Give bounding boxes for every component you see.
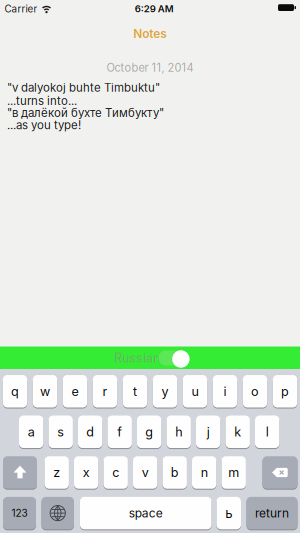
staticText: ...as you type! bbox=[7, 118, 81, 132]
staticText: ь bbox=[225, 505, 232, 521]
staticText: u bbox=[191, 384, 198, 399]
button[interactable]: ь bbox=[216, 497, 241, 529]
staticText: z bbox=[53, 465, 60, 480]
button[interactable]: d bbox=[78, 416, 102, 448]
button[interactable]: v bbox=[133, 456, 157, 489]
staticText: b bbox=[171, 465, 179, 480]
staticText: n bbox=[201, 465, 208, 480]
staticText: "в далёкой бухте Тимбукту" bbox=[7, 106, 164, 120]
staticText: c bbox=[112, 465, 119, 480]
button[interactable]: space bbox=[80, 497, 211, 529]
staticText: t bbox=[133, 384, 137, 399]
staticText: s bbox=[57, 424, 64, 439]
staticText: Carrier bbox=[4, 3, 37, 15]
button[interactable]: z bbox=[44, 456, 69, 489]
staticText: p bbox=[281, 384, 289, 399]
staticText: ...turns into... bbox=[7, 94, 77, 108]
staticText: a bbox=[28, 424, 35, 439]
staticText: w bbox=[40, 384, 50, 399]
button[interactable]: x bbox=[74, 456, 98, 489]
button[interactable]: j bbox=[196, 416, 220, 448]
staticText: j bbox=[207, 424, 210, 439]
staticText: m bbox=[228, 465, 239, 480]
staticText: i bbox=[223, 384, 226, 399]
button[interactable]: h bbox=[166, 416, 191, 448]
button[interactable]: e bbox=[63, 375, 87, 408]
staticText: o bbox=[251, 384, 259, 399]
staticText: x bbox=[83, 465, 90, 480]
button[interactable]: b bbox=[162, 456, 187, 489]
button[interactable]: r bbox=[93, 375, 117, 408]
staticText: v bbox=[142, 465, 149, 480]
staticText: "v dalyokoj buhte Timbuktu" bbox=[7, 81, 160, 94]
button[interactable]: w bbox=[33, 375, 57, 408]
button[interactable]: y bbox=[153, 375, 177, 408]
staticText: r bbox=[102, 384, 107, 399]
staticText: 123 bbox=[11, 507, 27, 519]
button[interactable]: p bbox=[273, 375, 297, 408]
button[interactable]: t bbox=[123, 375, 147, 408]
staticText: 6:29 AM bbox=[135, 3, 174, 15]
staticText: Notes bbox=[133, 27, 167, 41]
button[interactable]: Delete bbox=[262, 456, 297, 489]
button[interactable]: m bbox=[221, 456, 246, 489]
button[interactable]: a bbox=[19, 416, 43, 448]
staticText: y bbox=[161, 384, 168, 399]
staticText: e bbox=[71, 384, 78, 399]
staticText: October 11, 2014 bbox=[106, 61, 193, 74]
button[interactable]: s bbox=[48, 416, 73, 448]
button[interactable]: i bbox=[213, 375, 237, 408]
staticText: l bbox=[266, 424, 269, 439]
staticText: d bbox=[86, 424, 94, 439]
staticText: return bbox=[255, 506, 289, 520]
button[interactable]: k bbox=[225, 416, 250, 448]
staticText: k bbox=[234, 424, 241, 439]
button[interactable]: c bbox=[103, 456, 128, 489]
button[interactable]: g bbox=[137, 416, 161, 448]
button[interactable]: o bbox=[243, 375, 267, 408]
button[interactable]: f bbox=[107, 416, 132, 448]
staticText: g bbox=[145, 424, 153, 439]
button[interactable]: Russian bbox=[158, 349, 188, 366]
staticText: q bbox=[11, 384, 19, 399]
button[interactable]: 123 bbox=[3, 497, 36, 529]
staticText: Russian bbox=[114, 350, 160, 365]
button[interactable]: Shift bbox=[3, 456, 37, 489]
button[interactable]: n bbox=[192, 456, 216, 489]
button[interactable]: l bbox=[255, 416, 279, 448]
button[interactable]: return bbox=[246, 497, 297, 529]
button[interactable]: u bbox=[183, 375, 207, 408]
staticText: h bbox=[175, 424, 182, 439]
button[interactable]: Next keyboard bbox=[41, 497, 74, 529]
button[interactable]: q bbox=[3, 375, 27, 408]
staticText: f bbox=[117, 424, 122, 439]
staticText: space bbox=[129, 506, 163, 520]
